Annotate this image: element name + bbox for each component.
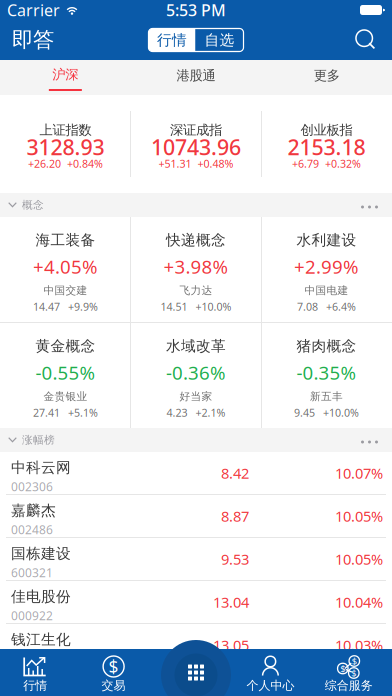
button[interactable]: 搜索: [354, 28, 378, 52]
button[interactable]: 港股通: [131, 60, 261, 95]
staticText: 深证成指: [170, 122, 222, 138]
button[interactable]: 钱江生化: [0, 624, 392, 666]
staticText: 10.04%: [335, 592, 383, 612]
staticText: 10.03%: [335, 635, 383, 655]
staticText: 涨幅榜: [22, 433, 55, 446]
staticText: 水利建设: [297, 231, 357, 249]
staticText: +0.84%: [67, 156, 103, 171]
staticText: 交易: [102, 678, 126, 693]
staticText: +2.99%: [294, 254, 359, 279]
staticText: 600796: [11, 650, 53, 666]
staticText: 2153.18: [288, 133, 366, 161]
button[interactable]: 嘉麟杰: [0, 495, 392, 537]
staticText: 概念: [22, 198, 44, 211]
staticText: 4.23: [166, 405, 187, 420]
staticText: 金贵银业: [43, 390, 87, 403]
staticText: +2.1%: [195, 405, 225, 420]
button[interactable]: 更多: [261, 60, 392, 95]
staticText: 中国交建: [43, 284, 87, 297]
staticText: 9.45: [294, 405, 315, 420]
staticText: 即答: [12, 27, 54, 53]
staticText: +0.48%: [197, 156, 233, 171]
staticText: 27.41: [33, 405, 60, 420]
staticText: 600321: [11, 564, 53, 580]
staticText: 13.05: [213, 635, 249, 655]
staticText: 行情: [157, 31, 187, 49]
button[interactable]: 自选: [195, 28, 243, 51]
staticText: $: [340, 662, 345, 675]
staticText: 快递概念: [166, 231, 226, 249]
button[interactable]: 行情: [148, 28, 195, 51]
staticText: +3.98%: [163, 254, 228, 279]
staticText: 002486: [11, 521, 53, 537]
staticText: Carrier: [7, 0, 60, 21]
button[interactable]: $: [310, 649, 388, 696]
button[interactable]: 更多: [359, 198, 380, 212]
button[interactable]: 国栋建设: [0, 538, 392, 580]
staticText: +9.9%: [68, 299, 98, 314]
staticText: 好当家: [179, 390, 212, 403]
staticText: 钱江生化: [11, 630, 71, 648]
staticText: 更多: [314, 67, 340, 84]
staticText: 黄金概念: [35, 337, 95, 355]
staticText: 综合服务: [325, 678, 373, 693]
staticText: +26.20: [28, 156, 61, 171]
staticText: 中科云网: [11, 458, 71, 476]
staticText: 行情: [23, 678, 47, 693]
staticText: +10.0%: [323, 405, 359, 420]
staticText: -0.35%: [297, 360, 357, 385]
staticText: 个人中心: [246, 678, 294, 693]
staticText: +51.31: [158, 156, 191, 171]
button[interactable]: 更多: [359, 433, 380, 447]
staticText: 自选: [204, 31, 234, 49]
button[interactable]: 猪肉概念: [261, 323, 392, 428]
button[interactable]: 水利建设: [261, 217, 392, 322]
staticText: 8.87: [221, 506, 249, 526]
staticText: 猪肉概念: [297, 337, 357, 355]
staticText: 海工装备: [35, 231, 95, 249]
staticText: +6.4%: [326, 299, 356, 314]
button[interactable]: 沪深: [0, 60, 131, 95]
button[interactable]: 快递概念: [131, 217, 261, 322]
button[interactable]: 中科云网: [0, 452, 392, 494]
staticText: 嘉麟杰: [11, 501, 56, 519]
button[interactable]: 上证指数: [0, 95, 131, 193]
staticText: 14.51: [160, 299, 187, 314]
button[interactable]: 黄金概念: [0, 323, 131, 428]
button[interactable]: 水域改革: [131, 323, 261, 428]
staticText: 8.42: [221, 463, 249, 483]
staticText: +4.05%: [33, 254, 98, 279]
staticText: 14.47: [33, 299, 60, 314]
button[interactable]: 创业板指: [261, 95, 392, 193]
staticText: 中国电建: [305, 284, 349, 297]
staticText: -0.55%: [35, 360, 95, 385]
staticText: 上证指数: [39, 122, 91, 138]
staticText: 7.08: [297, 299, 318, 314]
button[interactable]: 个人中心: [231, 649, 310, 696]
staticText: 佳电股份: [11, 587, 71, 605]
staticText: +5.1%: [68, 405, 98, 420]
button[interactable]: 海工装备: [0, 217, 131, 322]
staticText: 10.07%: [335, 463, 383, 483]
staticText: 10.05%: [335, 549, 383, 569]
staticText: 002306: [11, 478, 53, 494]
staticText: 港股通: [176, 67, 215, 84]
button[interactable]: 行情: [0, 649, 74, 696]
button[interactable]: 佳电股份: [0, 581, 392, 623]
staticText: 沪深: [52, 66, 78, 83]
staticText: 10.05%: [335, 506, 383, 526]
staticText: 飞力达: [179, 284, 212, 297]
staticText: 13.04: [213, 592, 249, 612]
button[interactable]: $: [74, 649, 153, 696]
staticText: $: [352, 655, 357, 667]
staticText: +10.0%: [195, 299, 231, 314]
staticText: 创业板指: [301, 122, 353, 138]
button[interactable]: 深证成指: [131, 95, 261, 193]
staticText: 3128.93: [26, 133, 104, 161]
staticText: +6.79: [292, 156, 319, 171]
staticText: 10743.96: [151, 133, 241, 161]
staticText: 新五丰: [310, 390, 343, 403]
staticText: 水域改革: [166, 337, 226, 355]
staticText: $: [109, 655, 119, 678]
staticText: 国栋建设: [11, 544, 71, 562]
